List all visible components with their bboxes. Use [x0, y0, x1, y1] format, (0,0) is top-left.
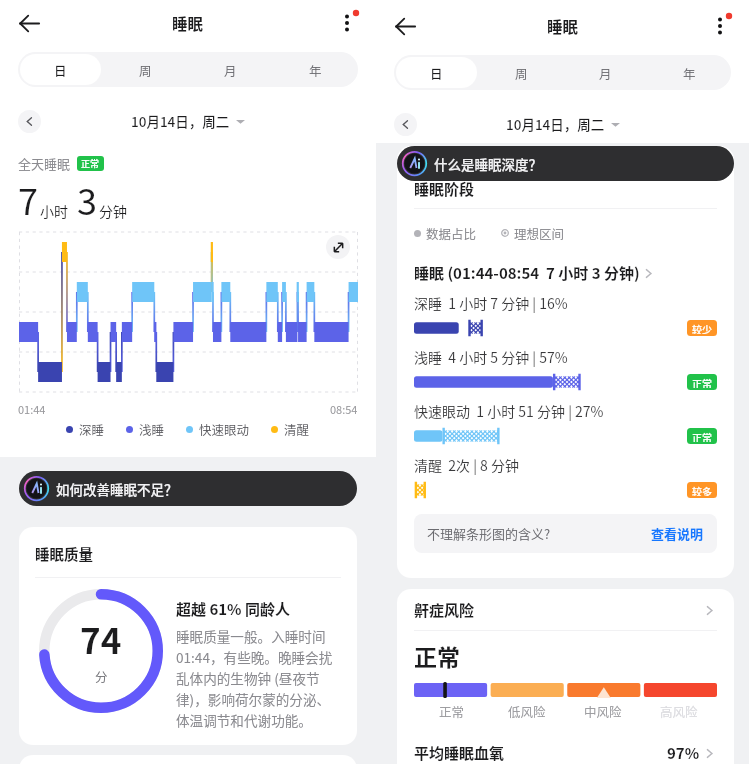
- staticText: 睡眠阶段: [414, 178, 475, 200]
- staticText: 什么是睡眠深度？: [434, 154, 542, 174]
- staticText: 数据占比: [426, 224, 477, 242]
- staticText: 日: [54, 61, 67, 79]
- staticText: 08:54: [330, 401, 358, 417]
- staticText: 正常: [81, 157, 100, 170]
- staticText: 查看说明: [651, 524, 704, 543]
- staticText: 日: [430, 64, 443, 82]
- staticText: 睡眠: [172, 12, 204, 34]
- button[interactable]: 年: [649, 57, 729, 88]
- button[interactable]: 月: [190, 54, 271, 85]
- staticText: 全天睡眠: [18, 154, 71, 173]
- staticText: 正常: [692, 430, 712, 442]
- button[interactable]: 如何改善睡眠不足？: [19, 471, 357, 506]
- button[interactable]: 月: [565, 57, 645, 88]
- button[interactable]: Back: [389, 10, 422, 43]
- staticText: 清醒: [284, 420, 310, 438]
- staticText: 年: [309, 61, 322, 79]
- staticText: 如何改善睡眠不足？: [56, 479, 178, 499]
- staticText: 3: [77, 173, 97, 225]
- staticText: 不理解条形图的含义?: [427, 524, 551, 543]
- staticText: 分钟: [99, 201, 127, 221]
- staticText: 分: [95, 667, 108, 685]
- staticText: 97%: [667, 742, 700, 764]
- staticText: 深睡 1 小时 7 分钟 | 16%: [414, 293, 568, 313]
- button[interactable]: 平均睡眠血氧: [414, 742, 717, 764]
- staticText: 超越 61% 同龄人: [176, 598, 290, 620]
- staticText: 理想区间: [514, 224, 565, 242]
- button[interactable]: 周: [105, 54, 186, 85]
- staticText: 较多: [692, 484, 712, 496]
- staticText: 月: [599, 64, 612, 82]
- staticText: 月: [224, 61, 237, 79]
- staticText: 7: [18, 173, 38, 225]
- button[interactable]: More options: [706, 11, 736, 41]
- staticText: 中风险: [584, 702, 622, 720]
- staticText: 清醒 2次 | 8 分钟: [414, 455, 519, 475]
- button[interactable]: Previous day: [18, 110, 41, 133]
- staticText: 低风险: [508, 702, 546, 720]
- button[interactable]: 10月14日，周二: [506, 114, 620, 134]
- staticText: 睡眠 (01:44-08:54 7 小时 3 分钟): [414, 262, 640, 284]
- staticText: 睡眠质量一般。入睡时间 01:44，有些晚。晚睡会扰乱体内的生物钟 (昼夜节律)…: [176, 626, 342, 729]
- button[interactable]: 睡眠 (01:44-08:54 7 小时 3 分钟): [414, 262, 717, 284]
- button[interactable]: 不理解条形图的含义?: [414, 514, 717, 553]
- staticText: 年: [683, 64, 696, 82]
- button[interactable]: 周: [481, 57, 561, 88]
- button[interactable]: Back: [13, 7, 46, 40]
- staticText: 睡眠: [547, 15, 579, 37]
- button[interactable]: 10月14日，周二: [131, 111, 245, 131]
- staticText: 睡眠质量: [35, 543, 93, 564]
- staticText: 正常: [692, 376, 712, 388]
- button[interactable]: Expand chart: [326, 235, 350, 259]
- staticText: 快速眼动: [199, 420, 250, 438]
- staticText: 深睡: [79, 420, 105, 438]
- staticText: 较少: [692, 322, 712, 334]
- staticText: 小时: [40, 201, 68, 221]
- staticText: 74: [80, 613, 122, 664]
- staticText: 浅睡: [139, 420, 165, 438]
- staticText: 10月14日，周二: [131, 111, 230, 131]
- staticText: 浅睡 4 小时 5 分钟 | 57%: [414, 347, 568, 367]
- staticText: 快速眼动 1 小时 51 分钟 | 27%: [414, 401, 604, 421]
- button[interactable]: 年: [275, 54, 356, 85]
- button[interactable]: 日: [20, 54, 101, 85]
- staticText: 周: [515, 64, 528, 82]
- staticText: 01:44: [18, 401, 46, 417]
- staticText: 正常: [439, 702, 465, 720]
- staticText: 平均睡眠血氧: [414, 742, 505, 764]
- staticText: 正常: [414, 639, 460, 672]
- button[interactable]: 什么是睡眠深度？: [397, 146, 734, 181]
- staticText: 周: [139, 61, 152, 79]
- staticText: 鼾症风险: [414, 599, 475, 621]
- button[interactable]: Previous day: [394, 113, 417, 136]
- staticText: 高风险: [660, 702, 698, 720]
- button[interactable]: 鼾症风险: [414, 599, 717, 621]
- button[interactable]: More options: [333, 8, 363, 38]
- staticText: 10月14日，周二: [506, 114, 605, 134]
- button[interactable]: 日: [396, 57, 477, 88]
